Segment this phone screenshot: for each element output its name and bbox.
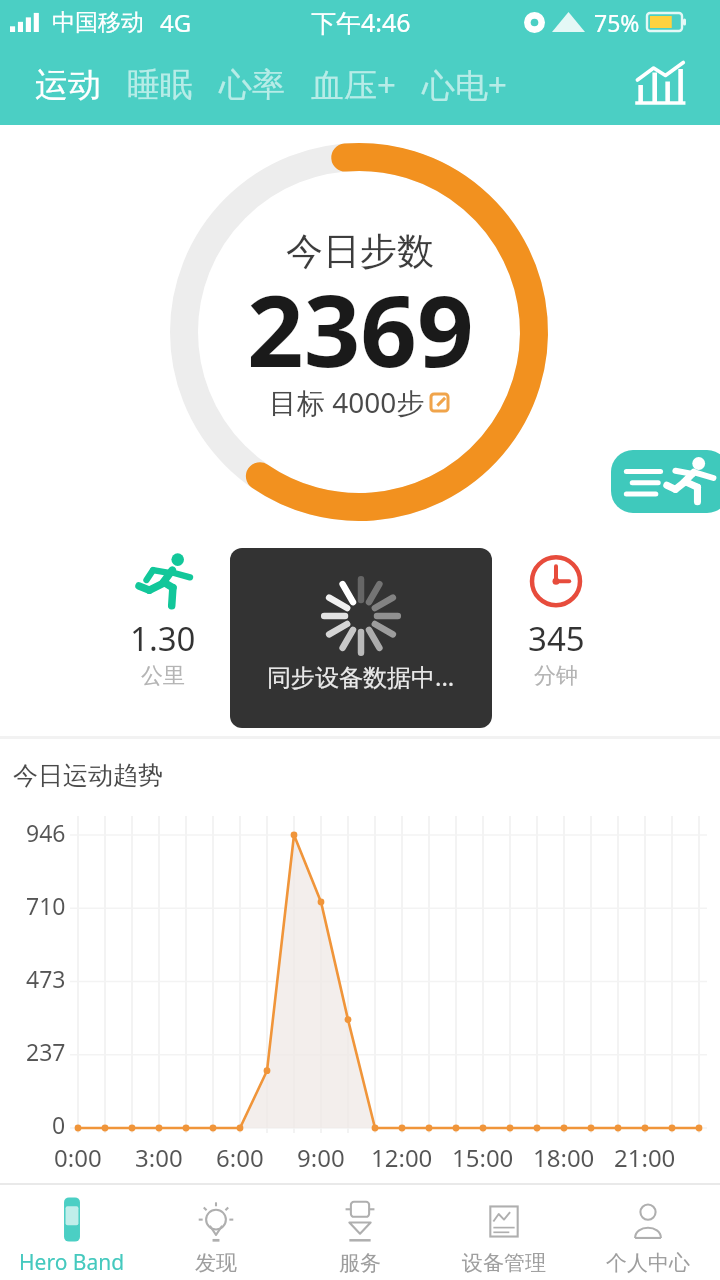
- button[interactable]: 目标 4000步: [269, 383, 451, 421]
- button[interactable]: 发现: [144, 1185, 288, 1280]
- button[interactable]: 1.30: [118, 550, 208, 690]
- button[interactable]: 心率: [206, 44, 298, 125]
- staticText: 设备管理: [462, 1250, 546, 1276]
- staticText: 心电+: [422, 62, 507, 107]
- button[interactable]: 运动: [22, 44, 114, 125]
- staticText: 目标 4000步: [269, 383, 425, 421]
- staticText: 发现: [195, 1250, 237, 1276]
- staticText: 服务: [339, 1250, 381, 1276]
- staticText: 同步设备数据中...: [267, 660, 455, 693]
- button[interactable]: Hero Band: [0, 1185, 144, 1280]
- staticText: 946: [26, 817, 66, 848]
- staticText: 21:00: [614, 1141, 676, 1174]
- staticText: 710: [26, 890, 66, 921]
- staticText: 0: [52, 1109, 66, 1140]
- staticText: 15:00: [452, 1141, 514, 1174]
- staticText: 睡眠: [127, 64, 193, 106]
- button[interactable]: 345: [511, 550, 601, 690]
- staticText: 分钟: [534, 662, 578, 690]
- staticText: 中国移动: [52, 8, 144, 37]
- staticText: 473: [26, 963, 66, 994]
- button[interactable]: 个人中心: [576, 1185, 720, 1280]
- staticText: 12:00: [371, 1141, 433, 1174]
- staticText: 血压+: [311, 62, 396, 107]
- staticText: 0:00: [54, 1141, 102, 1174]
- button[interactable]: 睡眠: [114, 44, 206, 125]
- staticText: 运动: [35, 64, 101, 106]
- staticText: 个人中心: [606, 1250, 690, 1276]
- staticText: 6:00: [216, 1141, 264, 1174]
- button[interactable]: Start run: [611, 450, 720, 513]
- staticText: 237: [26, 1036, 66, 1067]
- button[interactable]: 服务: [288, 1185, 432, 1280]
- staticText: 公里: [141, 662, 185, 690]
- staticText: Hero Band: [19, 1248, 125, 1277]
- staticText: 345: [528, 616, 585, 661]
- staticText: 75%: [594, 7, 640, 38]
- staticText: 下午4:46: [311, 5, 411, 39]
- button[interactable]: 设备管理: [432, 1185, 576, 1280]
- staticText: 2369: [247, 261, 474, 396]
- staticText: 1.30: [130, 616, 196, 661]
- button[interactable]: 心电+: [409, 44, 520, 125]
- staticText: 今日步数: [286, 228, 434, 275]
- staticText: 18:00: [533, 1141, 595, 1174]
- button[interactable]: Statistics: [600, 44, 720, 125]
- button[interactable]: 血压+: [298, 44, 409, 125]
- staticText: 4G: [160, 6, 192, 39]
- staticText: 今日运动趋势: [13, 760, 163, 791]
- staticText: 3:00: [135, 1141, 183, 1174]
- staticText: 心率: [219, 64, 285, 106]
- staticText: 9:00: [297, 1141, 345, 1174]
